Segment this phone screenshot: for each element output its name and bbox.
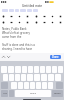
button[interactable]: key [46,66,51,73]
button[interactable]: suggestion [15,9,19,12]
button[interactable]: tool 02 [17,14,22,19]
button[interactable]: tool 00 [1,14,6,19]
button[interactable]: tool 13 [25,20,30,25]
staticText: space [30,92,36,95]
button[interactable]: key [18,82,23,89]
button[interactable]: key [48,82,53,89]
button[interactable]: return [52,90,63,97]
button[interactable]: tool 06 [50,14,55,19]
staticText: return [54,92,61,95]
button[interactable]: key [3,74,8,81]
button[interactable]: key [36,82,41,89]
button[interactable]: tool 01 [9,14,14,19]
button[interactable]: tool 11 [9,20,14,25]
button[interactable]: key [30,82,35,89]
button[interactable]: key [15,74,20,81]
staticText: sharing. I need to have [2,47,33,51]
button[interactable]: tool 07 [58,14,63,19]
staticText: Stuff is done and this is a [2,43,35,47]
staticText: Untitled note [22,4,43,8]
button[interactable]: key [58,66,63,73]
button[interactable]: key [34,66,39,73]
button[interactable]: key [52,66,57,73]
button[interactable]: key [24,82,29,89]
staticText: What's left at grocery [2,31,30,35]
button[interactable]: tool 10 [1,20,6,25]
button[interactable]: tool 15 [42,20,47,25]
button[interactable]: tool 16 [50,20,55,25]
button[interactable]: key [9,74,14,81]
button[interactable]: key [22,66,27,73]
staticText: 123 [3,92,7,95]
button[interactable]: tool 04 [34,14,39,19]
button[interactable]: tool 14 [34,20,39,25]
button[interactable]: key [21,74,26,81]
button[interactable]: key [28,66,33,73]
button[interactable]: tool 03 [25,14,30,19]
button[interactable]: tool 12 [17,20,22,25]
staticText: came from the [2,35,22,39]
button[interactable]: numbers [1,90,8,97]
staticText: Notes, Public Bank [2,27,27,31]
button[interactable]: key [42,82,47,89]
button[interactable]: key [40,66,45,73]
staticText: Done [52,55,59,59]
button[interactable]: tool 17 [58,20,63,25]
button[interactable]: tool 05 [42,14,47,19]
button[interactable]: Done [52,55,59,59]
button[interactable]: space [15,90,51,97]
